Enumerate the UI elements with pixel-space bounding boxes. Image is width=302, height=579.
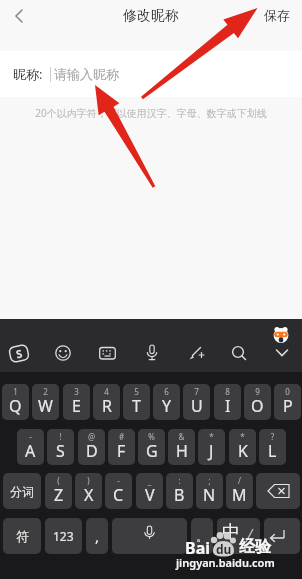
button[interactable]: & — [168, 429, 195, 465]
staticText: T — [132, 395, 141, 417]
staticText: 5 — [123, 386, 150, 397]
staticText: U — [191, 395, 203, 417]
staticText: 9 — [244, 386, 271, 397]
button[interactable]: / — [226, 473, 253, 509]
button[interactable]: 符 — [3, 518, 41, 554]
button[interactable]: 1 — [2, 384, 29, 420]
staticText: ) — [75, 475, 102, 486]
button[interactable] — [145, 344, 159, 362]
staticText: 请输入昵称 — [54, 66, 119, 82]
staticText: S — [14, 345, 24, 361]
staticText: V — [145, 484, 155, 506]
staticText: jingyan.baidu.com — [176, 555, 275, 570]
button[interactable]: S — [7, 342, 31, 365]
staticText: - — [17, 431, 44, 442]
button[interactable] — [274, 347, 290, 359]
staticText: 0 — [274, 386, 301, 397]
button[interactable]: 分词 — [3, 473, 41, 509]
staticText: Q — [9, 395, 22, 417]
button[interactable]: * — [229, 429, 256, 465]
button[interactable] — [264, 518, 300, 554]
staticText: 7 — [183, 386, 210, 397]
staticText: Bai — [185, 537, 211, 559]
button[interactable]: 3 — [63, 384, 90, 420]
button[interactable]: 8 — [214, 384, 241, 420]
staticText: L — [268, 440, 277, 462]
button[interactable] — [217, 518, 260, 554]
staticText: * — [229, 431, 256, 442]
staticText: ; — [196, 475, 223, 486]
staticText: 符 — [16, 528, 29, 544]
staticText: 1 — [2, 386, 29, 397]
button[interactable]: # — [108, 429, 135, 465]
button[interactable] — [231, 345, 247, 361]
button[interactable]: * — [198, 429, 225, 465]
button[interactable] — [6, 2, 32, 28]
staticText: 4 — [93, 386, 120, 397]
staticText: ! — [47, 431, 74, 442]
staticText: 保存 — [264, 7, 290, 23]
button[interactable]: : — [166, 473, 193, 509]
staticText: 昵称: — [13, 65, 43, 83]
staticText: @ — [78, 431, 105, 442]
staticText: 8 — [214, 386, 241, 397]
staticText: & — [168, 431, 195, 442]
staticText: / — [226, 475, 253, 486]
staticText: _ — [136, 475, 163, 486]
button[interactable]: - — [105, 473, 132, 509]
staticText: - — [105, 475, 132, 486]
button[interactable]: ) — [75, 473, 102, 509]
button[interactable]: 123 — [45, 518, 82, 554]
button[interactable]: 5 — [123, 384, 150, 420]
button[interactable] — [187, 344, 205, 362]
staticText: C — [113, 484, 124, 506]
staticText: N — [203, 484, 216, 506]
button[interactable]: 7 — [183, 384, 210, 420]
staticText: % — [138, 431, 165, 442]
button[interactable]: 9 — [244, 384, 271, 420]
button[interactable]: 。 — [191, 518, 213, 554]
staticText: Z — [54, 484, 64, 506]
staticText: , — [95, 526, 100, 546]
staticText: B — [174, 484, 185, 506]
staticText: 2 — [32, 386, 59, 397]
button[interactable]: 保存 — [260, 3, 294, 27]
button[interactable] — [256, 473, 300, 509]
button[interactable]: 昵称: — [0, 51, 302, 97]
button[interactable] — [272, 326, 290, 344]
button[interactable]: % — [138, 429, 165, 465]
button[interactable]: 0 — [274, 384, 301, 420]
button[interactable]: ! — [47, 429, 74, 465]
staticText: G — [146, 440, 158, 462]
staticText: 经验 — [239, 537, 271, 557]
staticText: J — [209, 440, 214, 462]
staticText: P — [283, 395, 293, 417]
button[interactable]: 2 — [32, 384, 59, 420]
staticText: ( — [45, 475, 72, 486]
staticText: S — [56, 440, 65, 462]
staticText: # — [108, 431, 135, 442]
staticText: du — [216, 541, 232, 557]
staticText: 20个以内字符，可以使用汉字、字母、数字或下划线 — [0, 106, 302, 120]
button[interactable]: 6 — [153, 384, 180, 420]
button[interactable]: ; — [196, 473, 223, 509]
button[interactable] — [112, 518, 187, 554]
button[interactable]: 4 — [93, 384, 120, 420]
staticText: H — [176, 440, 188, 462]
staticText: W — [38, 395, 53, 417]
staticText: D — [86, 440, 98, 462]
button[interactable] — [99, 346, 116, 360]
button[interactable]: _ — [136, 473, 163, 509]
staticText: 中 — [222, 521, 240, 544]
staticText: 分词 — [10, 484, 34, 499]
button[interactable]: ( — [45, 473, 72, 509]
button[interactable]: ? — [259, 429, 286, 465]
button[interactable]: @ — [78, 429, 105, 465]
staticText: X — [84, 484, 94, 506]
button[interactable]: , — [86, 518, 108, 554]
staticText: M — [232, 484, 247, 506]
button[interactable] — [55, 345, 71, 361]
staticText: F — [117, 440, 126, 462]
staticText: A — [25, 440, 36, 462]
button[interactable]: - — [17, 429, 44, 465]
